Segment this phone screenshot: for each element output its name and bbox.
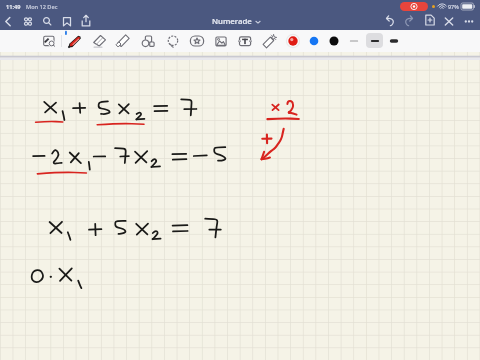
button[interactable]: Medium stroke xyxy=(362,30,388,52)
button[interactable]: Undo xyxy=(381,13,399,30)
button[interactable]: Pages xyxy=(19,13,37,30)
button[interactable]: Numerade xyxy=(212,16,261,27)
staticText: 11:49 xyxy=(6,3,21,11)
button[interactable]: Search xyxy=(38,13,56,30)
button[interactable]: Text xyxy=(232,30,258,52)
button[interactable]: Close xyxy=(440,13,458,30)
button[interactable]: Thin stroke xyxy=(341,30,367,52)
button[interactable]: Image xyxy=(208,30,234,52)
button[interactable]: Shapes xyxy=(135,30,161,52)
button[interactable]: Eraser xyxy=(85,30,111,52)
button[interactable]: Back xyxy=(0,13,17,30)
button[interactable]: Redo xyxy=(400,13,418,30)
button[interactable]: Medium stroke xyxy=(366,33,383,48)
button[interactable]: Lasso xyxy=(160,30,186,52)
button[interactable]: Laser pointer xyxy=(257,30,283,52)
button[interactable]: Select xyxy=(36,30,62,52)
button[interactable]: More options xyxy=(460,13,478,30)
button[interactable]: Red xyxy=(280,30,306,52)
button[interactable]: Bookmark xyxy=(58,13,76,30)
button[interactable]: Share xyxy=(77,13,95,30)
staticText: Numerade xyxy=(212,16,252,27)
button[interactable]: Highlighter xyxy=(109,30,135,52)
staticText: Mon 12 Dec xyxy=(26,3,58,11)
button[interactable]: Blue xyxy=(301,30,327,52)
staticText: 97% xyxy=(448,3,459,10)
button[interactable]: Black xyxy=(321,30,347,52)
button[interactable]: Sticker xyxy=(184,30,210,52)
button[interactable]: New page xyxy=(421,13,439,30)
button[interactable]: Thick stroke xyxy=(381,30,407,52)
button[interactable]: Pen xyxy=(61,30,87,52)
